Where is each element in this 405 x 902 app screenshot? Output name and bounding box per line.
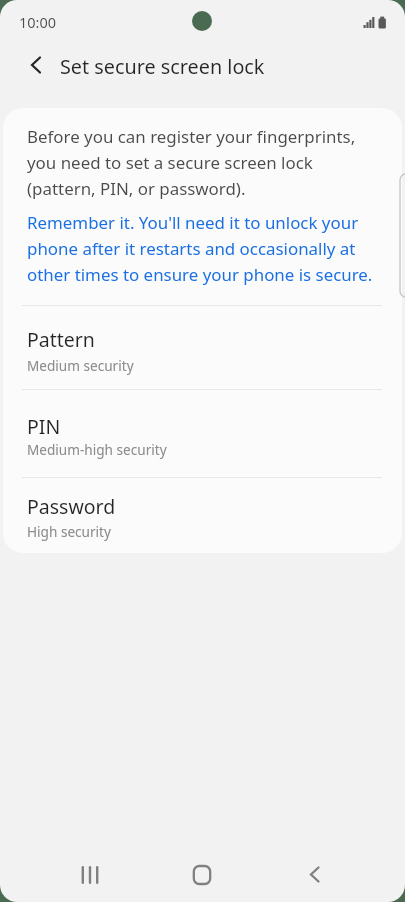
staticText: Password (27, 493, 116, 520)
button[interactable] (68, 853, 112, 897)
staticText: 10:00 (19, 12, 57, 32)
button[interactable]: PIN (3, 390, 402, 478)
staticText: Medium security (27, 356, 134, 375)
button[interactable] (16, 50, 56, 80)
staticText: Before you can register your fingerprint… (27, 125, 356, 200)
staticText: High security (27, 522, 111, 541)
staticText: Pattern (27, 326, 95, 353)
button[interactable]: Pattern (3, 306, 402, 390)
staticText: PIN (27, 413, 61, 440)
staticText: Set secure screen lock (60, 53, 265, 80)
staticText: Remember it. You'll need it to unlock yo… (27, 211, 373, 286)
staticText: Medium-high security (27, 440, 167, 459)
button[interactable]: Password (3, 478, 402, 553)
button[interactable] (293, 853, 337, 897)
button[interactable] (180, 853, 224, 897)
